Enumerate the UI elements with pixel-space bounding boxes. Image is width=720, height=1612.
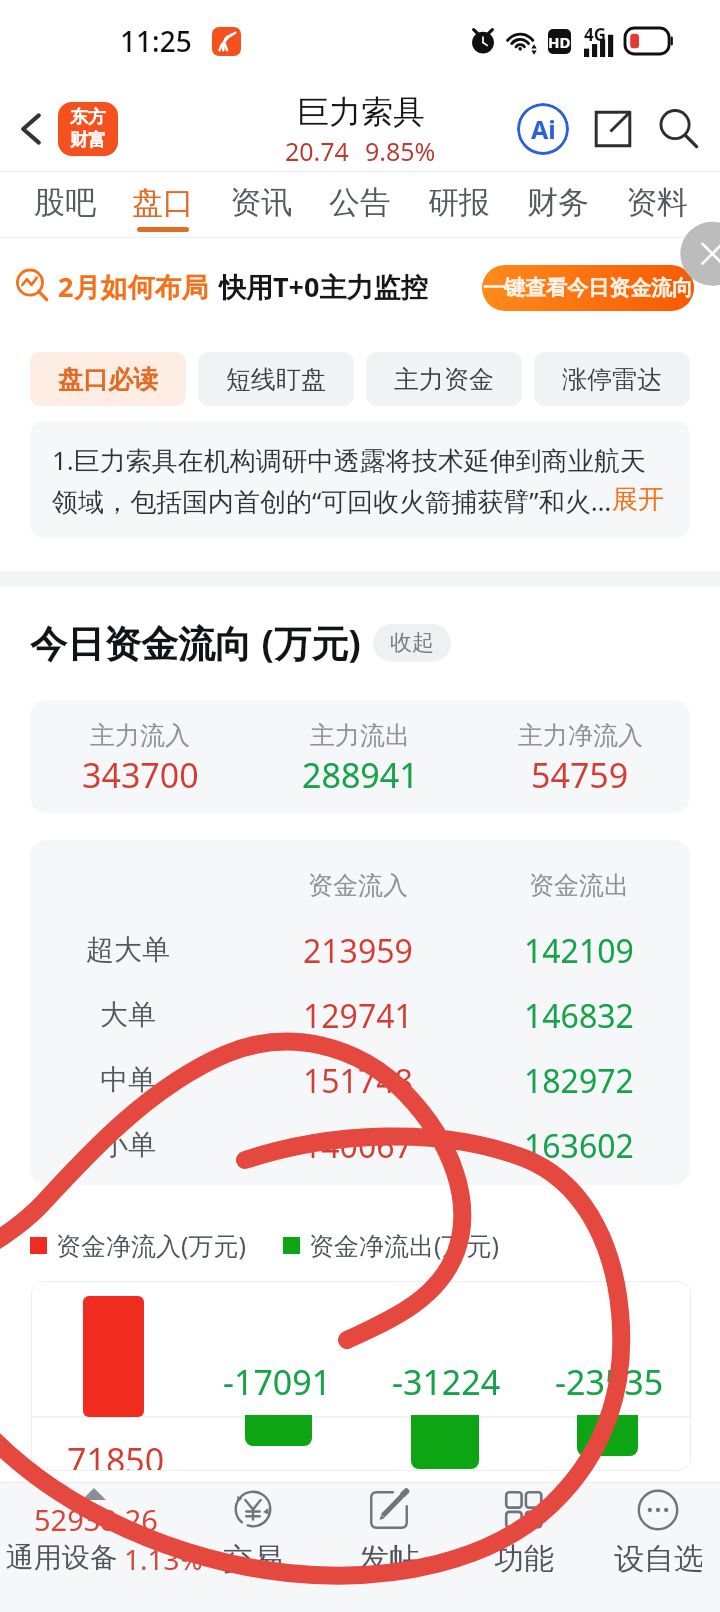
button[interactable]: 1.巨力索具在机构调研中透露将技术延伸到商业航天: [30, 421, 690, 538]
staticText: 财务: [527, 183, 589, 222]
staticText: 公告: [329, 183, 391, 222]
button[interactable]: 发帖: [345, 1482, 433, 1612]
staticText: 主力资金: [394, 364, 494, 395]
staticText: 快用T+0主力监控: [219, 268, 428, 305]
staticText: 4G: [584, 23, 607, 46]
staticText: 盘口必读: [58, 364, 158, 395]
staticText: 涨停雷达: [562, 364, 662, 395]
button[interactable]: 交易: [209, 1482, 297, 1612]
button[interactable]: AI助手: [512, 98, 574, 160]
staticText: 资金净流入(万元): [56, 1228, 247, 1262]
staticText: 11:25: [120, 22, 192, 60]
staticText: 设自选: [614, 1540, 702, 1578]
staticText: 东方: [70, 106, 106, 129]
button[interactable]: 关闭: [656, 239, 720, 303]
staticText: 142109: [524, 929, 634, 973]
staticText: 展开: [612, 483, 664, 516]
staticText: 资金流出: [529, 870, 629, 901]
button[interactable]: 东方财富: [58, 102, 118, 156]
button[interactable]: 一键查看今日资金流向: [482, 265, 694, 311]
button[interactable]: 公告: [310, 171, 409, 238]
button[interactable]: 返回: [0, 97, 64, 161]
staticText: 288941: [302, 752, 419, 798]
staticText: 20.74: [285, 134, 349, 168]
staticText: 发帖: [359, 1540, 419, 1578]
staticText: 中单: [100, 1062, 156, 1097]
staticText: -17091: [223, 1359, 332, 1405]
button[interactable]: 主力资金: [366, 352, 522, 406]
staticText: 主力流入: [90, 720, 190, 751]
staticText: 71850: [67, 1437, 165, 1471]
staticText: -31224: [392, 1359, 501, 1405]
staticText: 短线盯盘: [226, 364, 326, 395]
staticText: 通用设备: [6, 1540, 118, 1575]
button[interactable]: 盘口: [114, 171, 212, 238]
staticText: 1.巨力索具在机构调研中透露将技术延伸到商业航天: [52, 442, 646, 478]
staticText: 140067: [303, 1124, 413, 1168]
staticText: 343700: [82, 752, 199, 798]
staticText: 182972: [524, 1059, 634, 1103]
staticText: 股吧: [34, 183, 96, 222]
staticText: 54759: [531, 752, 629, 798]
staticText: 财富: [70, 129, 106, 152]
button[interactable]: 设自选: [614, 1482, 702, 1612]
button[interactable]: 52938.26: [0, 1482, 196, 1612]
staticText: 巨力索具: [297, 92, 425, 132]
staticText: 资金净流出(万元): [309, 1228, 500, 1262]
staticText: 领域，包括国内首创的“可回收火箭捕获臂”和火…: [52, 483, 612, 519]
staticText: 151748: [303, 1059, 413, 1103]
button[interactable]: 资料: [607, 171, 706, 238]
staticText: 213959: [303, 929, 413, 973]
staticText: 资料: [626, 183, 688, 222]
staticText: 主力净流入: [518, 720, 643, 751]
staticText: HD: [548, 32, 571, 52]
staticText: 52938.26: [34, 1500, 158, 1539]
button[interactable]: 分享: [582, 98, 644, 160]
staticText: 资金流入: [308, 870, 408, 901]
staticText: 收起: [390, 629, 434, 657]
staticText: 交易: [223, 1540, 283, 1578]
button[interactable]: 财务: [508, 171, 607, 238]
staticText: -23535: [555, 1359, 664, 1405]
staticText: 研报: [428, 183, 490, 222]
staticText: 163602: [524, 1124, 634, 1168]
button[interactable]: 资讯: [212, 171, 310, 238]
staticText: 资讯: [230, 183, 292, 222]
staticText: 小单: [100, 1127, 156, 1162]
staticText: 今日资金流向 (万元): [30, 617, 361, 668]
staticText: 大单: [100, 997, 156, 1032]
button[interactable]: 盘口必读: [30, 352, 186, 406]
staticText: 1.13%: [124, 1540, 203, 1578]
staticText: 主力流出: [310, 720, 410, 751]
staticText: 超大单: [86, 932, 170, 967]
staticText: 一键查看今日资金流向: [483, 275, 693, 301]
button[interactable]: 收起: [373, 624, 451, 662]
button[interactable]: 功能: [480, 1482, 568, 1612]
staticText: 功能: [494, 1540, 554, 1578]
staticText: 146832: [524, 994, 634, 1038]
button[interactable]: 股吧: [16, 171, 114, 238]
staticText: 129741: [303, 994, 413, 1038]
staticText: 9.85%: [365, 134, 436, 168]
button[interactable]: 涨停雷达: [534, 352, 690, 406]
button[interactable]: 研报: [409, 171, 508, 238]
staticText: 2月如何布局: [58, 268, 209, 305]
button[interactable]: 搜索: [648, 98, 710, 160]
staticText: Ai: [531, 112, 556, 146]
button[interactable]: 短线盯盘: [198, 352, 354, 406]
staticText: 盘口: [132, 183, 194, 222]
